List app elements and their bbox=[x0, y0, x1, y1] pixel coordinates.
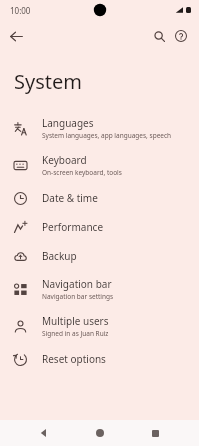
staticText: Navigation bar settings bbox=[42, 292, 114, 301]
button[interactable]: Multiple users bbox=[0, 307, 199, 344]
button[interactable]: Recents bbox=[144, 422, 166, 444]
button[interactable]: Backup bbox=[0, 241, 199, 270]
staticText: Keyboard bbox=[42, 153, 87, 167]
button[interactable]: Keyboard bbox=[0, 146, 199, 183]
button[interactable]: Search bbox=[148, 25, 170, 47]
button[interactable]: Performance bbox=[0, 212, 199, 241]
staticText: System languages, app languages, speech bbox=[42, 131, 172, 140]
staticText: Multiple users bbox=[42, 314, 109, 328]
staticText: Date & time bbox=[42, 191, 98, 205]
button[interactable]: Help bbox=[170, 25, 192, 47]
button[interactable]: Reset options bbox=[0, 344, 199, 373]
staticText: Signed in as Juan Ruiz bbox=[42, 329, 109, 338]
button[interactable]: Navigation bar bbox=[0, 270, 199, 307]
button[interactable]: Home bbox=[89, 422, 111, 444]
staticText: Navigation bar bbox=[42, 277, 112, 291]
staticText: Languages bbox=[42, 116, 94, 130]
staticText: 10:00 bbox=[10, 5, 31, 16]
button[interactable]: Back bbox=[4, 24, 28, 48]
button[interactable]: Date & time bbox=[0, 183, 199, 212]
staticText: On-screen keyboard, tools bbox=[42, 168, 122, 177]
staticText: Backup bbox=[42, 249, 77, 263]
staticText: Performance bbox=[42, 220, 104, 234]
button[interactable]: Languages bbox=[0, 109, 199, 146]
button[interactable]: Back bbox=[33, 422, 55, 444]
staticText: Reset options bbox=[42, 352, 106, 366]
staticText: System bbox=[14, 68, 82, 95]
